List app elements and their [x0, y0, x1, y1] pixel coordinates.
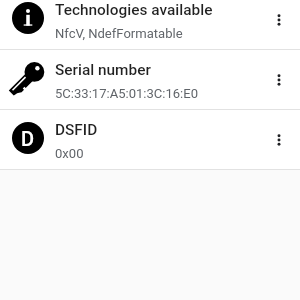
button[interactable]: More options: [258, 0, 300, 50]
staticText: DSFID: [55, 121, 98, 139]
button[interactable]: More options: [258, 50, 300, 110]
staticText: D: [21, 127, 35, 150]
button[interactable]: More options: [258, 110, 300, 170]
staticText: 0x00: [55, 146, 84, 161]
staticText: NfcV, NdefFormatable: [55, 26, 183, 41]
staticText: 5C:33:17:A5:01:3C:16:E0: [55, 86, 199, 101]
button[interactable]: Technologies available: [0, 0, 300, 50]
button[interactable]: D: [0, 110, 300, 170]
button[interactable]: Serial number: [0, 50, 300, 110]
staticText: Serial number: [55, 61, 151, 79]
staticText: Technologies available: [55, 1, 213, 19]
